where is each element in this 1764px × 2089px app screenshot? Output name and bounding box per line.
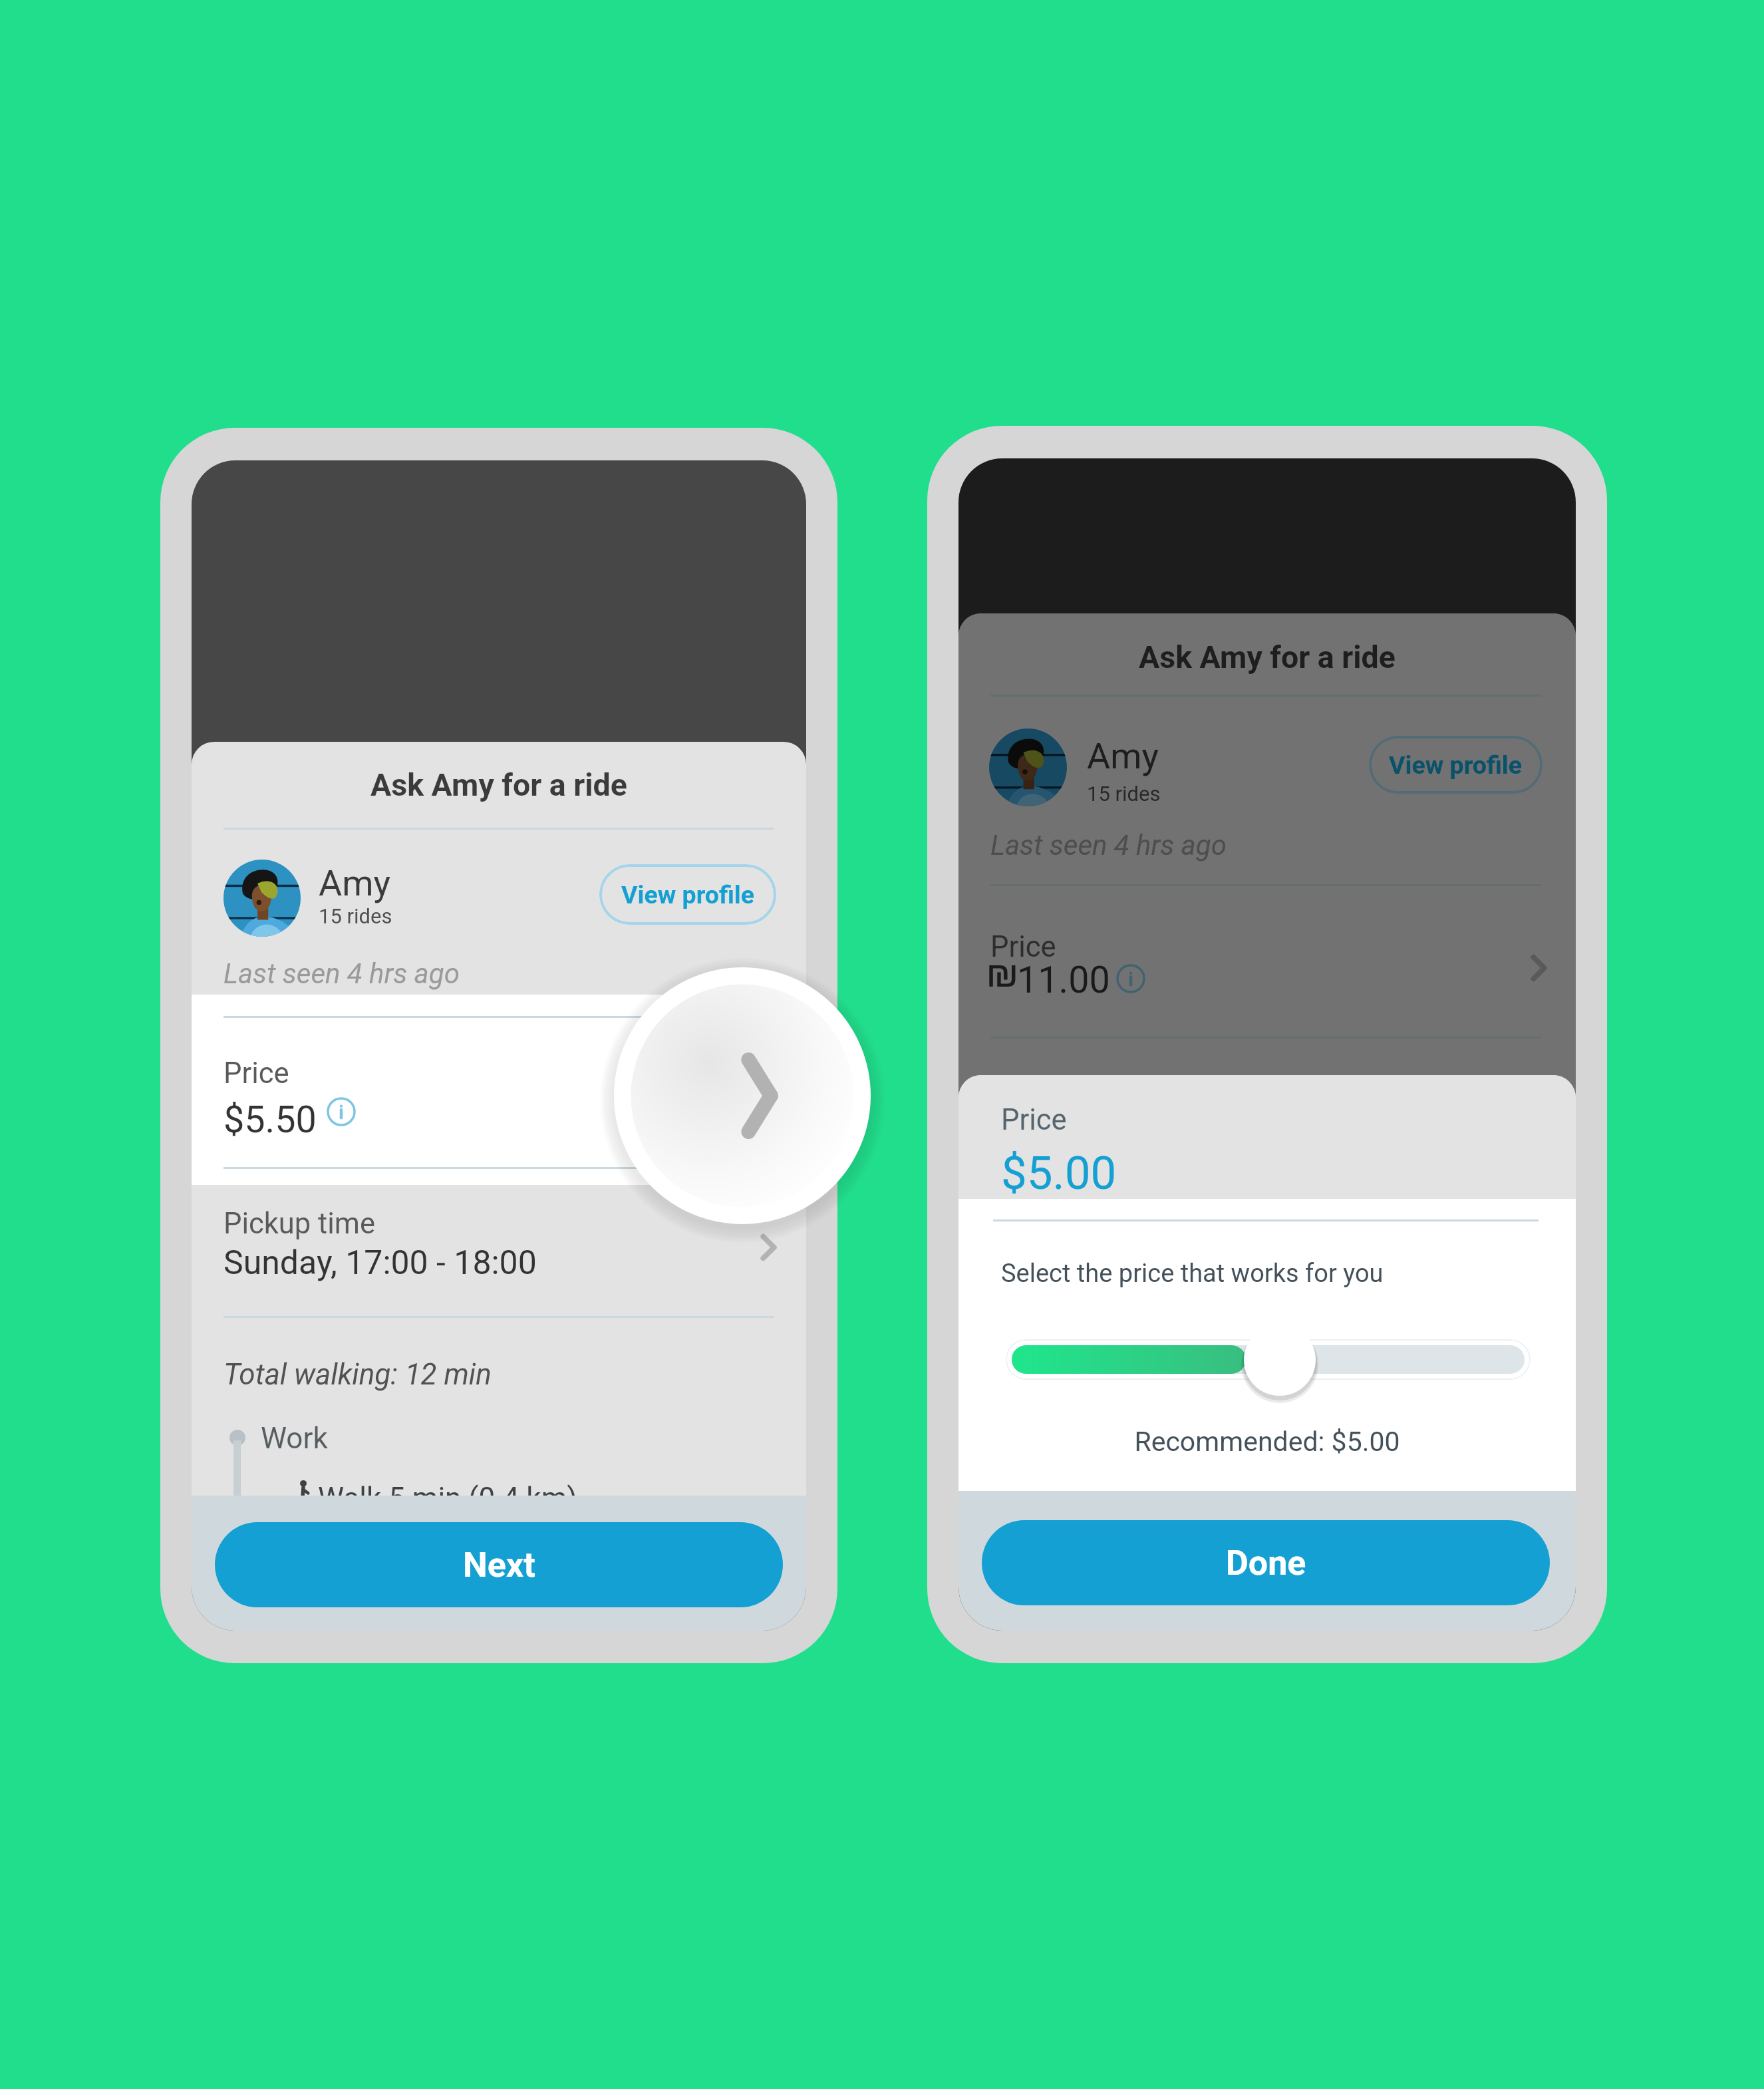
staticText: Ask Amy for a ride [958,639,1576,675]
button[interactable]: View profile [599,864,776,925]
staticText: $5.00 [1001,1146,1117,1200]
staticText: View profile [621,880,755,909]
staticText: Price [223,1056,289,1090]
staticText: Pickup time [223,1207,376,1241]
button[interactable]: Price info [327,1097,356,1126]
button[interactable]: Done [982,1520,1550,1605]
button[interactable]: Price row [192,995,806,1185]
staticText: ₪ [986,948,1018,997]
staticText: 15 rides [1087,782,1161,806]
staticText: 15 rides [319,904,392,928]
button[interactable]: Pickup time row [192,1185,806,1316]
button[interactable]: Price info [1116,964,1145,993]
staticText: Select the price that works for you [1001,1259,1384,1289]
staticText: $5.50 [223,1098,317,1141]
staticText: Price [1001,1103,1067,1137]
staticText: Next [463,1545,535,1585]
staticText: View profile [1389,750,1523,780]
staticText: Total walking: 12 min [223,1357,492,1392]
staticText: Amy [1087,735,1159,777]
staticText: Work [261,1421,328,1456]
button[interactable]: Price slider [1235,1315,1325,1405]
staticText: Last seen 4 hrs ago [223,957,460,990]
button[interactable]: Price row [958,893,1576,1037]
staticText: Done [1226,1543,1306,1583]
staticText: 11.00 [1017,958,1110,1001]
staticText: Price [990,930,1056,964]
button[interactable]: View profile [1369,736,1543,794]
staticText: Amy [319,862,391,904]
button[interactable]: Next [215,1522,783,1607]
other: Open [752,1229,789,1266]
other: Open [1522,949,1559,987]
staticText: Ask Amy for a ride [192,767,806,803]
staticText: Sunday, 17:00 - 18:00 [223,1243,537,1283]
staticText: Last seen 4 hrs ago [990,829,1227,862]
staticText: Recommended: $5.00 [958,1426,1576,1458]
button[interactable]: Open price selector [614,967,871,1224]
staticText: Walk 5 min (0.4 km) [318,1481,577,1496]
